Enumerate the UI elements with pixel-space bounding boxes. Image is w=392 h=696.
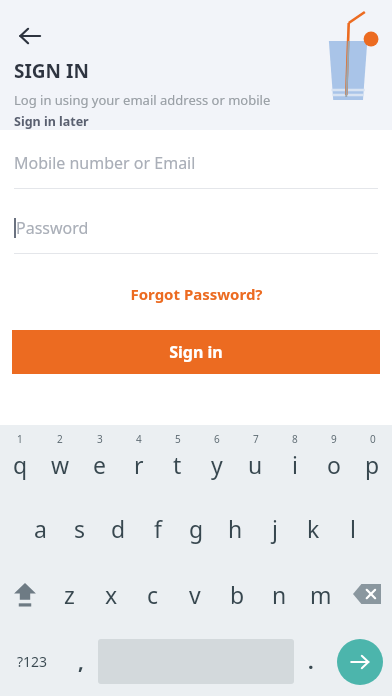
staticText: 4 <box>136 432 142 446</box>
button[interactable]: 4 <box>119 425 158 495</box>
button[interactable]: 9 <box>314 425 353 495</box>
staticText: Sign in later <box>14 113 89 130</box>
button[interactable]: d <box>99 495 138 561</box>
button[interactable]: Sign in <box>12 330 380 374</box>
button[interactable]: Back <box>8 14 52 58</box>
staticText: d <box>111 513 126 544</box>
staticText: ?123 <box>17 652 48 671</box>
staticText: SIGN IN <box>14 58 89 84</box>
staticText: 8 <box>292 432 298 446</box>
button[interactable]: ?123 <box>0 627 64 696</box>
button[interactable]: 0 <box>353 425 392 495</box>
staticText: n <box>272 579 287 610</box>
staticText: p <box>365 449 380 480</box>
staticText: 1 <box>17 432 23 446</box>
staticText: Mobile number or Email <box>14 152 196 174</box>
staticText: 2 <box>57 432 63 446</box>
staticText: q <box>13 449 28 480</box>
staticText: z <box>64 579 75 610</box>
staticText: 9 <box>331 432 337 446</box>
staticText: Password <box>16 217 89 239</box>
button[interactable]: z <box>49 561 90 627</box>
button[interactable]: c <box>132 561 174 627</box>
staticText: o <box>327 449 341 480</box>
button[interactable]: k <box>294 495 333 561</box>
button[interactable]: a <box>21 495 60 561</box>
button[interactable]: 6 <box>197 425 236 495</box>
staticText: h <box>228 513 243 544</box>
button[interactable]: . <box>294 627 328 696</box>
staticText: Forgot Password? <box>130 284 263 304</box>
staticText: t <box>173 449 182 480</box>
staticText: w <box>51 449 70 480</box>
button[interactable]: l <box>333 495 372 561</box>
staticText: x <box>105 579 118 610</box>
button[interactable]: s <box>60 495 99 561</box>
button[interactable]: n <box>258 561 300 627</box>
staticText: b <box>230 579 245 610</box>
button[interactable]: j <box>255 495 294 561</box>
button[interactable]: 8 <box>275 425 314 495</box>
button[interactable]: Enter <box>337 639 383 685</box>
staticText: 5 <box>175 432 181 446</box>
staticText: , <box>78 648 84 675</box>
button[interactable]: 1 <box>0 425 40 495</box>
staticText: i <box>292 449 298 480</box>
button[interactable]: 2 <box>40 425 80 495</box>
staticText: . <box>308 648 314 675</box>
staticText: 7 <box>253 432 259 446</box>
staticText: m <box>310 579 332 610</box>
staticText: Log in using your email address or mobil… <box>14 91 271 109</box>
staticText: u <box>248 449 263 480</box>
button[interactable]: m <box>300 561 342 627</box>
staticText: 3 <box>97 432 103 446</box>
button[interactable]: Shift <box>0 561 49 627</box>
staticText: s <box>74 513 86 544</box>
staticText: k <box>307 513 320 544</box>
staticText: l <box>350 513 356 544</box>
button[interactable]: x <box>90 561 132 627</box>
staticText: v <box>189 579 201 610</box>
button[interactable]: 3 <box>80 425 119 495</box>
staticText: Sign in <box>169 341 223 363</box>
staticText: r <box>134 449 144 480</box>
button[interactable]: g <box>177 495 216 561</box>
button[interactable]: v <box>174 561 216 627</box>
staticText: c <box>147 579 159 610</box>
button[interactable]: , <box>64 627 98 696</box>
staticText: j <box>272 513 278 544</box>
staticText: 6 <box>214 432 220 446</box>
button[interactable]: Forgot Password? <box>0 284 392 304</box>
staticText: g <box>189 513 204 544</box>
staticText: e <box>93 449 106 480</box>
staticText: 0 <box>370 432 376 446</box>
staticText: y <box>211 449 223 480</box>
button[interactable]: 7 <box>236 425 275 495</box>
button[interactable]: h <box>216 495 255 561</box>
button[interactable]: b <box>216 561 258 627</box>
button[interactable]: Sign in later <box>14 113 89 130</box>
button[interactable]: 5 <box>158 425 197 495</box>
button[interactable]: Backspace <box>342 561 392 627</box>
staticText: a <box>34 513 47 544</box>
button[interactable]: f <box>138 495 177 561</box>
staticText: f <box>154 513 162 544</box>
